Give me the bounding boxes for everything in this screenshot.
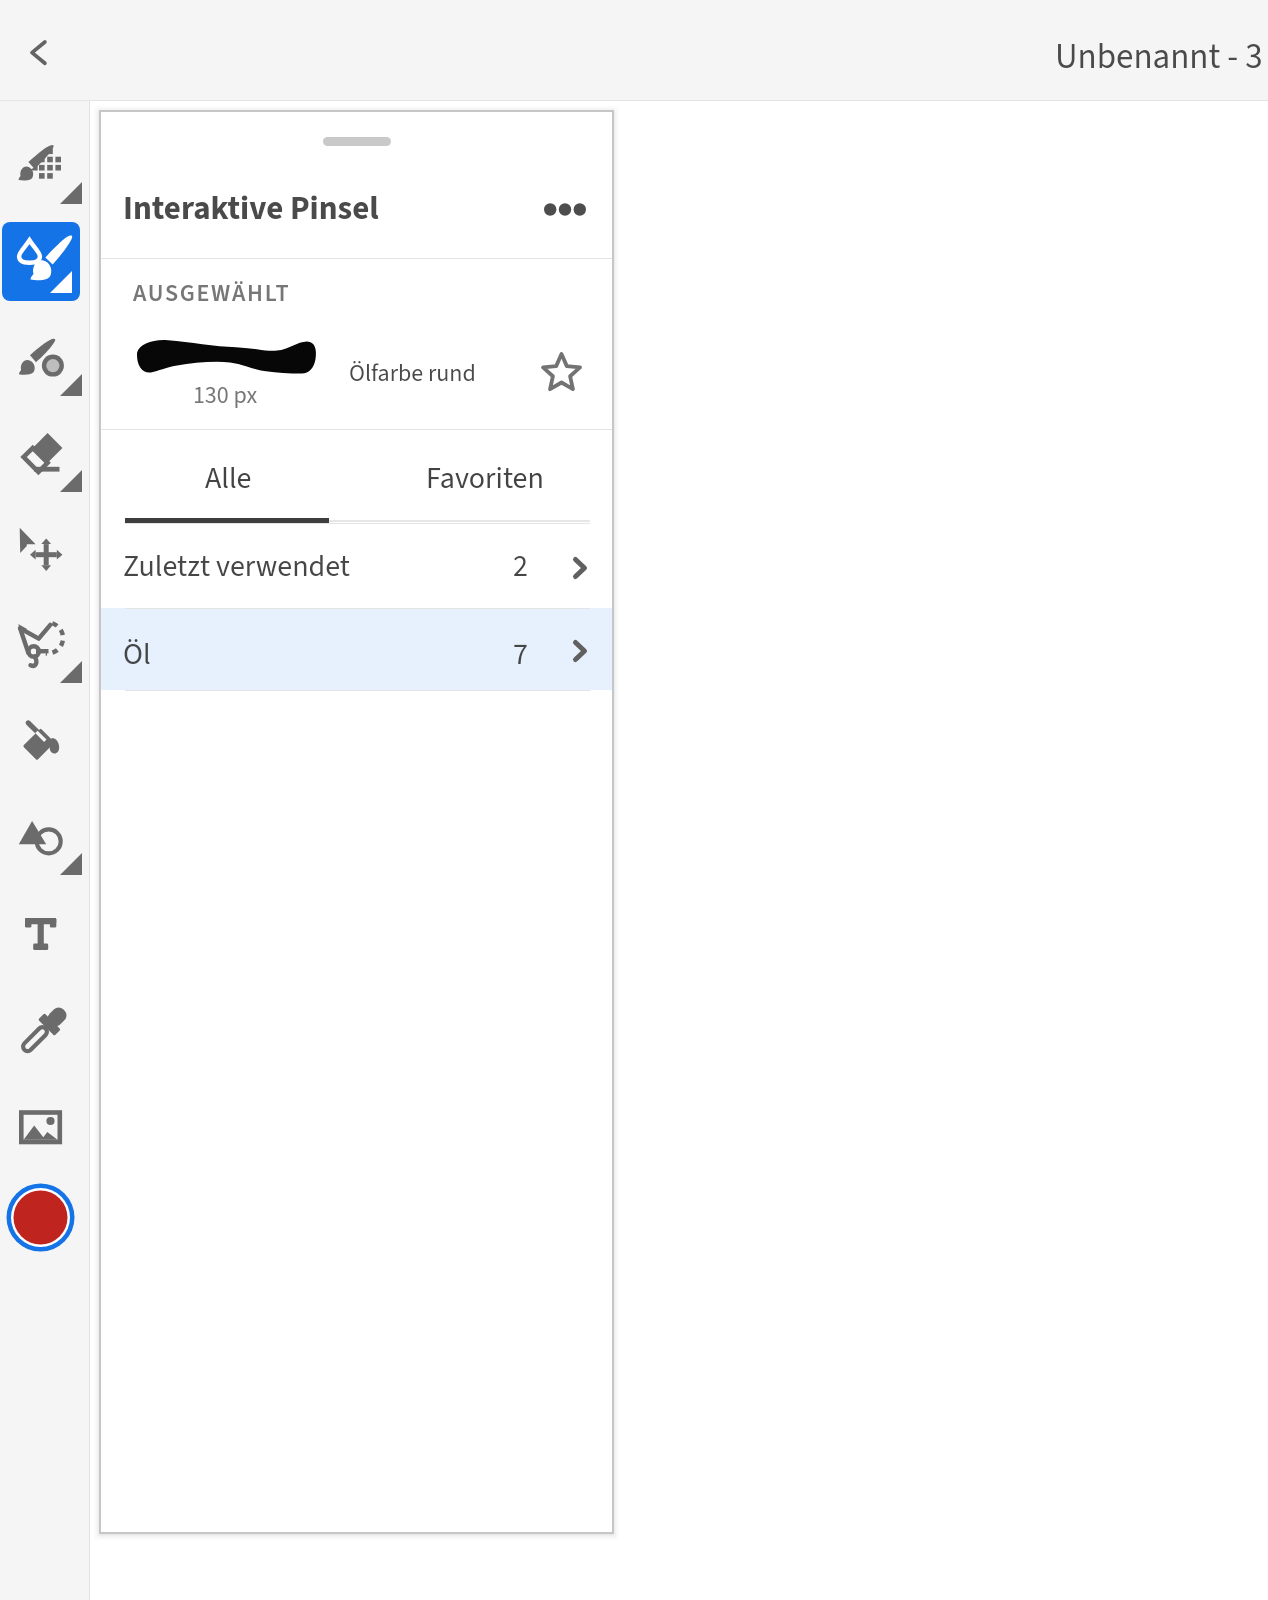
- button[interactable]: Text: [2, 890, 80, 968]
- staticText: Öl: [123, 633, 151, 676]
- button[interactable]: Add to favourites: [527, 337, 595, 405]
- button[interactable]: Colour picker: [2, 991, 80, 1069]
- staticText: Alle: [205, 457, 252, 500]
- button[interactable]: Pixel brush: [2, 127, 80, 205]
- button[interactable]: [100, 259, 613, 429]
- button[interactable]: Live brush: [2, 222, 80, 301]
- button[interactable]: Water colour brush: [2, 319, 80, 397]
- staticText: 130 px: [134, 378, 316, 412]
- button[interactable]: Transform: [2, 511, 80, 589]
- button[interactable]: [100, 523, 613, 608]
- button[interactable]: More options: [530, 174, 600, 244]
- staticText: Ölfarbe rund: [349, 356, 476, 390]
- staticText: Unbenannt - 3: [1055, 32, 1263, 82]
- button[interactable]: Current colour: [6, 1183, 75, 1252]
- button[interactable]: Alle: [100, 430, 356, 518]
- button[interactable]: Eraser: [2, 415, 80, 493]
- button[interactable]: Fill: [2, 702, 80, 780]
- staticText: Favoriten: [426, 457, 544, 500]
- staticText: 7: [513, 633, 528, 676]
- button[interactable]: Back: [13, 26, 63, 76]
- staticText: Interaktive Pinsel: [123, 185, 379, 232]
- button[interactable]: [100, 608, 613, 690]
- button[interactable]: Insert image: [2, 1087, 80, 1165]
- button[interactable]: Lasso select: [2, 606, 80, 684]
- staticText: AUSGEWÄHLT: [133, 276, 291, 310]
- button[interactable]: Shapes: [2, 798, 80, 876]
- staticText: 2: [513, 545, 528, 588]
- staticText: Zuletzt verwendet: [123, 545, 350, 588]
- button[interactable]: Favoriten: [356, 430, 613, 518]
